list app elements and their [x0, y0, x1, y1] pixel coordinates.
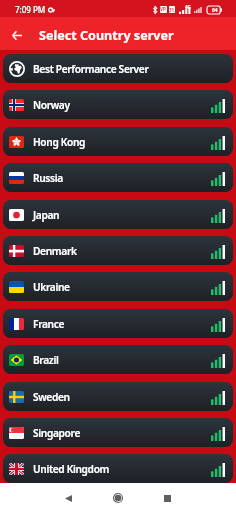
staticText: United Kingdom: [33, 462, 110, 476]
staticText: Russia: [33, 171, 63, 185]
staticText: Ukraine: [33, 280, 70, 294]
staticText: Sweden: [33, 390, 70, 404]
button[interactable]: Back: [5, 23, 29, 47]
button[interactable]: Brazil: [3, 345, 233, 374]
staticText: Singapore: [33, 426, 81, 440]
button[interactable]: France: [3, 309, 233, 338]
staticText: Best Performance Server: [33, 62, 149, 76]
staticText: Japan: [33, 208, 60, 222]
button[interactable]: Sweden: [3, 382, 233, 411]
button[interactable]: Ukraine: [3, 272, 233, 301]
button[interactable]: Japan: [3, 200, 233, 229]
button[interactable]: Hong Kong: [3, 127, 233, 156]
staticText: France: [33, 317, 65, 331]
staticText: 64: [212, 7, 218, 14]
staticText: 4G: [185, 4, 191, 10]
staticText: 7:09 PM: [15, 4, 46, 15]
staticText: 31: [169, 7, 175, 13]
staticText: Norway: [33, 98, 70, 112]
button[interactable]: Back: [55, 485, 81, 511]
staticText: Denmark: [33, 244, 77, 258]
button[interactable]: Norway: [3, 90, 233, 119]
button[interactable]: Best Performance Server: [3, 54, 233, 83]
staticText: Hong Kong: [33, 135, 86, 149]
button[interactable]: Recents: [154, 485, 180, 511]
button[interactable]: Home: [105, 485, 131, 511]
button[interactable]: Russia: [3, 163, 233, 192]
staticText: VPN: [160, 6, 167, 13]
button[interactable]: United Kingdom: [3, 454, 233, 483]
button[interactable]: Denmark: [3, 236, 233, 265]
button[interactable]: Singapore: [3, 418, 233, 447]
staticText: Brazil: [33, 353, 59, 367]
staticText: Select Country server: [39, 27, 174, 44]
